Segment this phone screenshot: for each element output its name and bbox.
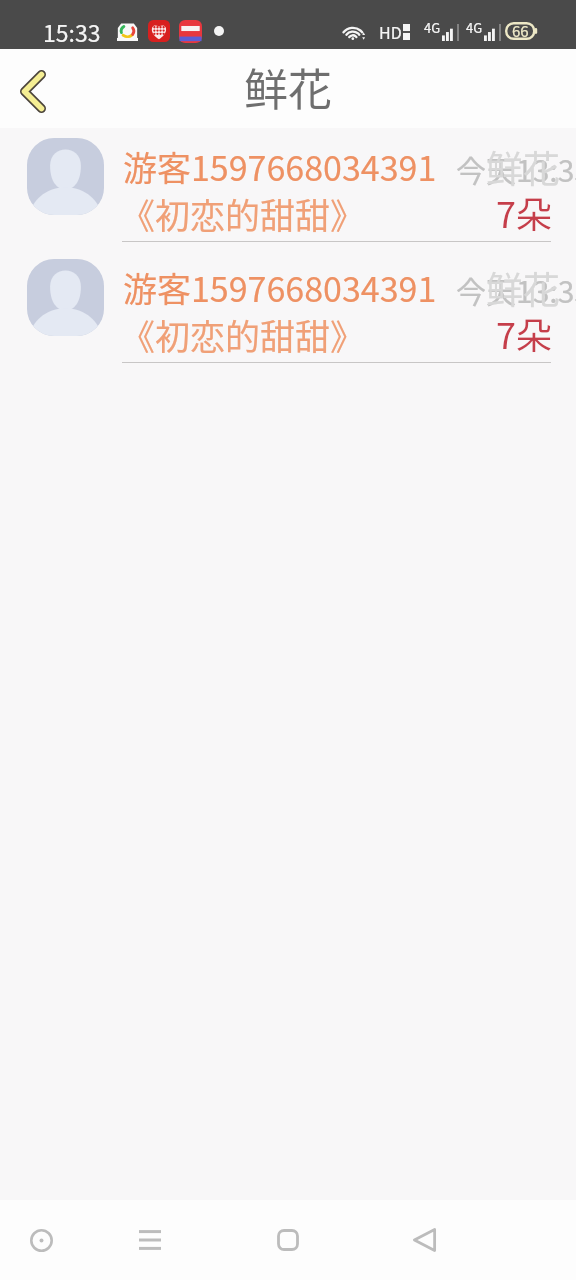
staticText: 4G	[424, 18, 441, 37]
staticText: 15:33	[43, 15, 101, 48]
staticText: HD	[379, 20, 402, 43]
staticText: 鲜花	[486, 261, 560, 315]
button[interactable]: Menu	[107, 1200, 193, 1280]
button[interactable]: 游客1597668034391	[0, 250, 576, 371]
staticText: 鲜花	[244, 55, 332, 119]
staticText: 4G	[466, 18, 483, 37]
staticText: 今天13:33	[456, 147, 576, 190]
staticText: 《初恋的甜甜》	[120, 188, 366, 239]
button[interactable]: Back	[0, 56, 66, 126]
staticText: 《初恋的甜甜》	[120, 309, 366, 360]
staticText: 7朵	[496, 307, 552, 359]
staticText: 今天13:33	[456, 268, 576, 311]
staticText: 7朵	[496, 186, 552, 238]
staticText: 游客1597668034391	[123, 263, 437, 312]
staticText: 66	[512, 20, 529, 42]
staticText: 游客1597668034391	[123, 142, 437, 191]
button[interactable]: Recent apps	[0, 1200, 84, 1280]
button[interactable]: Back	[381, 1200, 467, 1280]
button[interactable]: 游客1597668034391	[0, 129, 576, 250]
staticText: 鲜花	[486, 140, 560, 194]
button[interactable]: Home	[245, 1200, 331, 1280]
